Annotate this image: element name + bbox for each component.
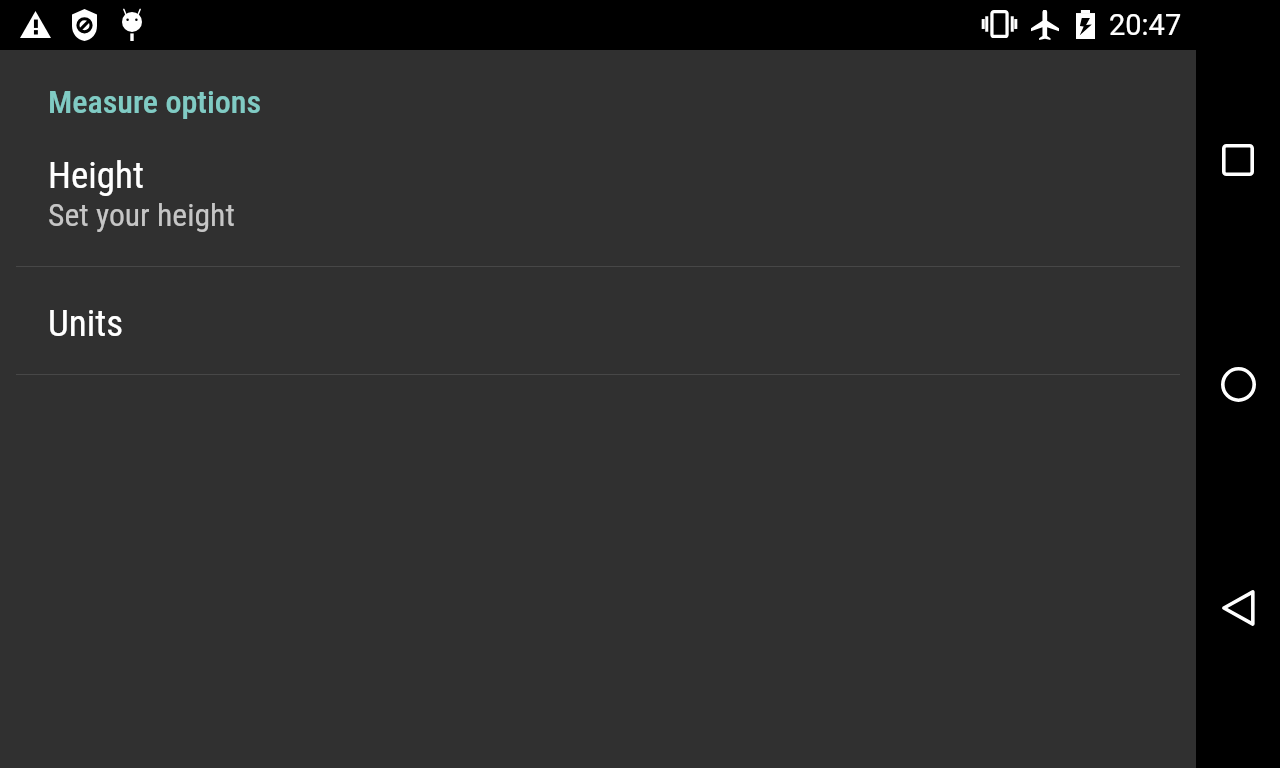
button[interactable]: Recent apps (1196, 128, 1280, 192)
button[interactable]: Height (0, 126, 1196, 266)
button[interactable]: Units (0, 267, 1196, 374)
button[interactable]: Back (1196, 576, 1280, 640)
staticText: 20:47 (1109, 8, 1182, 42)
staticText: Set your height (48, 197, 235, 234)
staticText: Height (48, 154, 144, 197)
button[interactable]: Home (1196, 352, 1280, 416)
staticText: Units (48, 302, 124, 345)
staticText: Measure options (48, 83, 262, 121)
